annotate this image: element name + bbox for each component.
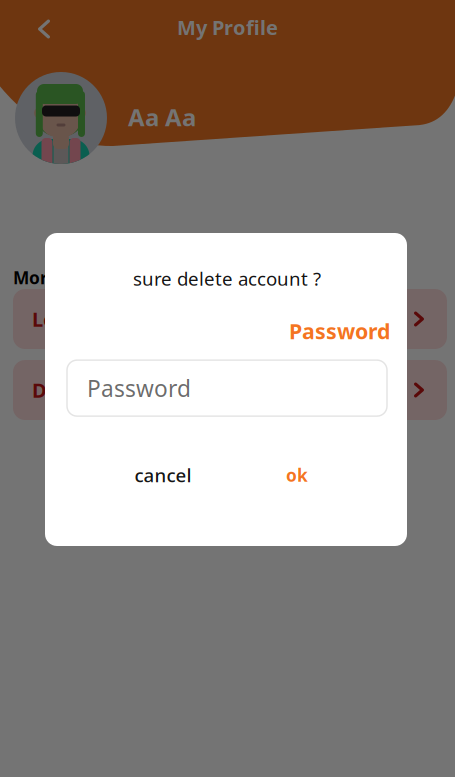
button[interactable]: Logout	[13, 289, 447, 349]
staticText: sure delete account ?	[133, 266, 321, 291]
button[interactable]: Back	[24, 9, 64, 49]
staticText: Password	[289, 317, 390, 345]
button[interactable]: ok	[267, 460, 327, 490]
button[interactable]: cancel	[103, 460, 223, 490]
button[interactable]: Delete Account	[13, 360, 447, 420]
staticText: More	[13, 266, 57, 289]
staticText: Aa Aa	[128, 101, 196, 133]
staticText: Delete Account	[32, 377, 185, 403]
staticText: ok	[286, 464, 308, 487]
staticText: Logout	[32, 306, 104, 332]
staticText: Password	[87, 373, 191, 403]
staticText: My Profile	[177, 14, 278, 41]
staticText: cancel	[134, 463, 191, 487]
